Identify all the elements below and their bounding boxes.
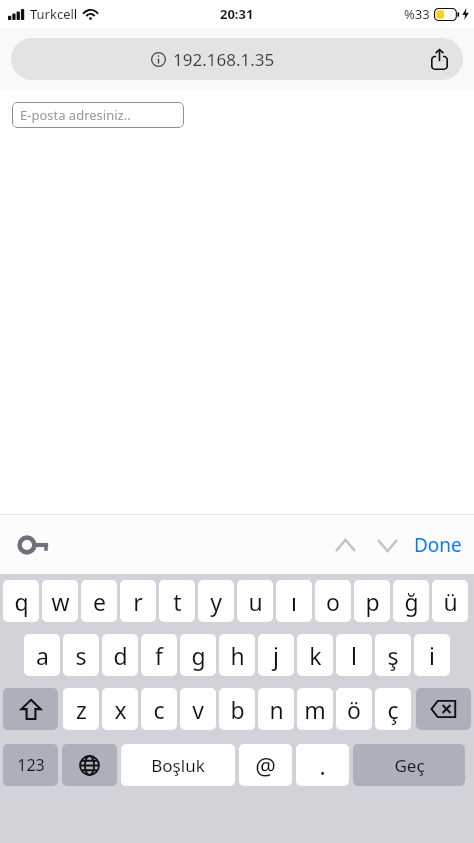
button[interactable]: j [258,634,294,676]
staticText: ö [347,694,361,725]
staticText: E-posta adresiniz.. [20,106,131,124]
button[interactable]: 123 [3,744,58,786]
button[interactable]: x [102,688,138,730]
button[interactable]: n [258,688,294,730]
staticText: Turkcell [30,5,78,23]
button[interactable]: k [297,634,333,676]
button[interactable]: o [315,580,351,622]
staticText: ş [387,640,399,671]
button[interactable]: ü [432,580,468,622]
button[interactable]: d [102,634,138,676]
staticText: 123 [17,754,45,776]
staticText: u [248,586,263,617]
button[interactable]: w [42,580,78,622]
button[interactable]: @ [239,744,292,786]
staticText: a [36,640,49,671]
button[interactable]: y [198,580,234,622]
button[interactable]: Share [415,38,463,80]
staticText: z [76,694,87,725]
staticText: n [269,694,284,725]
button[interactable]: p [354,580,390,622]
staticText: x [114,694,127,725]
staticText: g [191,640,206,671]
staticText: 192.168.1.35 [173,48,275,71]
button[interactable]: Switch keyboard [62,744,117,786]
button[interactable]: Shift [3,688,58,730]
button[interactable]: Next field [366,524,408,566]
button[interactable]: v [180,688,216,730]
button[interactable]: b [219,688,255,730]
staticText: o [326,586,340,617]
staticText: b [230,694,245,725]
staticText: d [113,640,128,671]
staticText: f [155,640,163,671]
staticText: Geç [394,754,425,777]
button[interactable]: c [141,688,177,730]
button[interactable]: s [63,634,99,676]
button[interactable]: t [159,580,195,622]
staticText: l [351,640,357,671]
button[interactable]: ş [375,634,411,676]
staticText: i [429,640,435,671]
button[interactable]: ç [375,688,411,730]
staticText: e [93,586,106,617]
staticText: %33 [404,5,430,23]
button[interactable]: u [237,580,273,622]
button[interactable]: ö [336,688,372,730]
staticText: k [309,640,322,671]
staticText: q [14,586,29,617]
button[interactable]: q [3,580,39,622]
staticText: c [153,694,165,725]
staticText: v [192,694,204,725]
staticText: s [75,640,87,671]
staticText: ı [291,586,297,617]
button[interactable]: m [297,688,333,730]
button[interactable]: E-posta adresiniz.. [12,102,184,128]
staticText: h [230,640,245,671]
staticText: ü [443,586,458,617]
staticText: @ [255,750,276,781]
button[interactable]: e [81,580,117,622]
staticText: t [173,586,182,617]
button[interactable]: Boşluk [121,744,235,786]
button[interactable]: Backspace [416,688,471,730]
button[interactable]: a [24,634,60,676]
button[interactable]: r [120,580,156,622]
button[interactable]: . [296,744,349,786]
button[interactable]: f [141,634,177,676]
button[interactable]: Previous field [324,524,366,566]
staticText: 20:31 [220,5,254,23]
staticText: ç [387,694,399,725]
button[interactable]: Done [414,523,462,567]
button[interactable]: Passwords [12,523,56,567]
staticText: y [210,586,222,617]
staticText: r [133,586,143,617]
button[interactable]: l [336,634,372,676]
button[interactable]: i [414,634,450,676]
button[interactable]: Geç [353,744,465,786]
staticText: p [365,586,380,617]
staticText: ğ [404,586,419,617]
staticText: w [51,586,70,617]
staticText: Done [414,532,462,558]
staticText: Boşluk [151,754,205,777]
staticText: m [304,694,326,725]
button[interactable]: g [180,634,216,676]
button[interactable]: ı [276,580,312,622]
button[interactable]: h [219,634,255,676]
staticText: j [273,640,279,671]
button[interactable]: 192.168.1.35 [11,38,463,80]
staticText: . [319,750,326,781]
button[interactable]: ğ [393,580,429,622]
button[interactable]: z [63,688,99,730]
